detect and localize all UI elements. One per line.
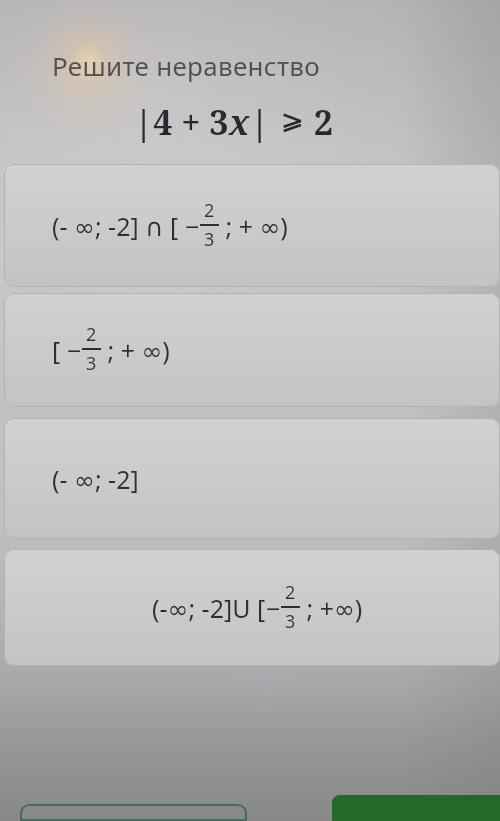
staticText: 2: [285, 580, 296, 605]
staticText: −: [67, 333, 82, 367]
staticText: x: [229, 99, 250, 145]
staticText: ; + ∞): [101, 333, 170, 367]
button[interactable]: (- ∞; -2]: [4, 418, 500, 539]
staticText: 3: [204, 227, 215, 252]
staticText: (- ∞; -2]: [52, 462, 139, 496]
button[interactable]: Secondary action: [20, 804, 247, 821]
staticText: 2: [305, 99, 334, 145]
staticText: |4 + 3: [134, 99, 229, 145]
staticText: Решите неравенство: [52, 48, 321, 83]
button[interactable]: (- ∞; -2] ∩ [: [4, 164, 500, 287]
staticText: −: [266, 591, 281, 625]
staticText: 2: [86, 322, 97, 347]
staticText: ; + ∞): [219, 209, 288, 243]
staticText: −: [185, 209, 200, 243]
staticText: 3: [285, 609, 296, 634]
staticText: 2: [204, 198, 215, 223]
staticText: (- ∞; -2] ∩ [: [52, 209, 185, 243]
button[interactable]: Submit answer: [332, 795, 500, 821]
staticText: (-∞; -2]U [: [152, 591, 266, 625]
staticText: 3: [86, 351, 97, 376]
staticText: ; +∞): [300, 591, 363, 625]
button[interactable]: (-∞; -2]U [: [4, 549, 500, 666]
staticText: |: [250, 99, 279, 145]
button[interactable]: [: [4, 293, 500, 407]
staticText: [: [52, 333, 67, 367]
